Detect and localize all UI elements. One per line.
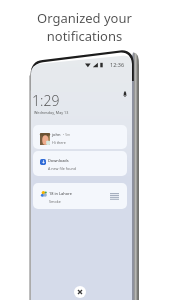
- staticText: 12:36: [110, 61, 125, 68]
- button[interactable]: john: [33, 125, 127, 149]
- button[interactable]: Close: [74, 286, 86, 298]
- staticText: A new file found: [48, 166, 76, 171]
- staticText: Wednesday, May 13: [34, 110, 69, 115]
- staticText: 18 in Lahore: [49, 191, 72, 196]
- staticText: Downloads: [48, 158, 69, 163]
- button[interactable]: Downloads: [33, 151, 127, 176]
- staticText: Hi there: [52, 140, 66, 145]
- staticText: Smoke: [49, 199, 61, 204]
- staticText: 1:29: [32, 91, 60, 110]
- staticText: john: [52, 132, 61, 137]
- button[interactable]: 18 in Lahore: [33, 183, 127, 209]
- staticText: Organized your notifications: [0, 9, 169, 45]
- staticText: • 5m: [63, 132, 71, 137]
